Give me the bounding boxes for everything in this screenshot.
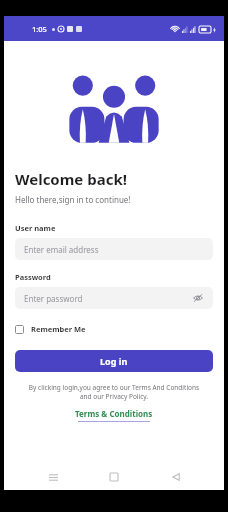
button[interactable]: Enter password (15, 287, 213, 309)
button[interactable]: Log in (15, 350, 213, 372)
button[interactable]: Home (101, 464, 127, 490)
staticText: User name (15, 223, 56, 233)
staticText: Enter password (24, 293, 192, 304)
button[interactable]: Remember Me (15, 322, 86, 336)
button[interactable]: Back (163, 464, 189, 490)
staticText: Password (15, 272, 51, 282)
staticText: Remember Me (31, 324, 86, 334)
button[interactable]: Recent apps (40, 464, 66, 490)
button[interactable]: Enter email address (15, 238, 213, 260)
staticText: Hello there,sign in to continue! (15, 194, 131, 205)
staticText: By clicking login,you agree to our Terms… (15, 383, 213, 401)
staticText: Enter email address (24, 244, 204, 255)
staticText: Terms & Conditions (75, 408, 153, 419)
staticText: Log in (100, 355, 128, 367)
button[interactable]: Terms & Conditions (75, 408, 153, 422)
staticText: 1:05 (32, 24, 47, 34)
button[interactable]: Show password (192, 292, 204, 304)
staticText: Welcome back! (15, 169, 127, 189)
